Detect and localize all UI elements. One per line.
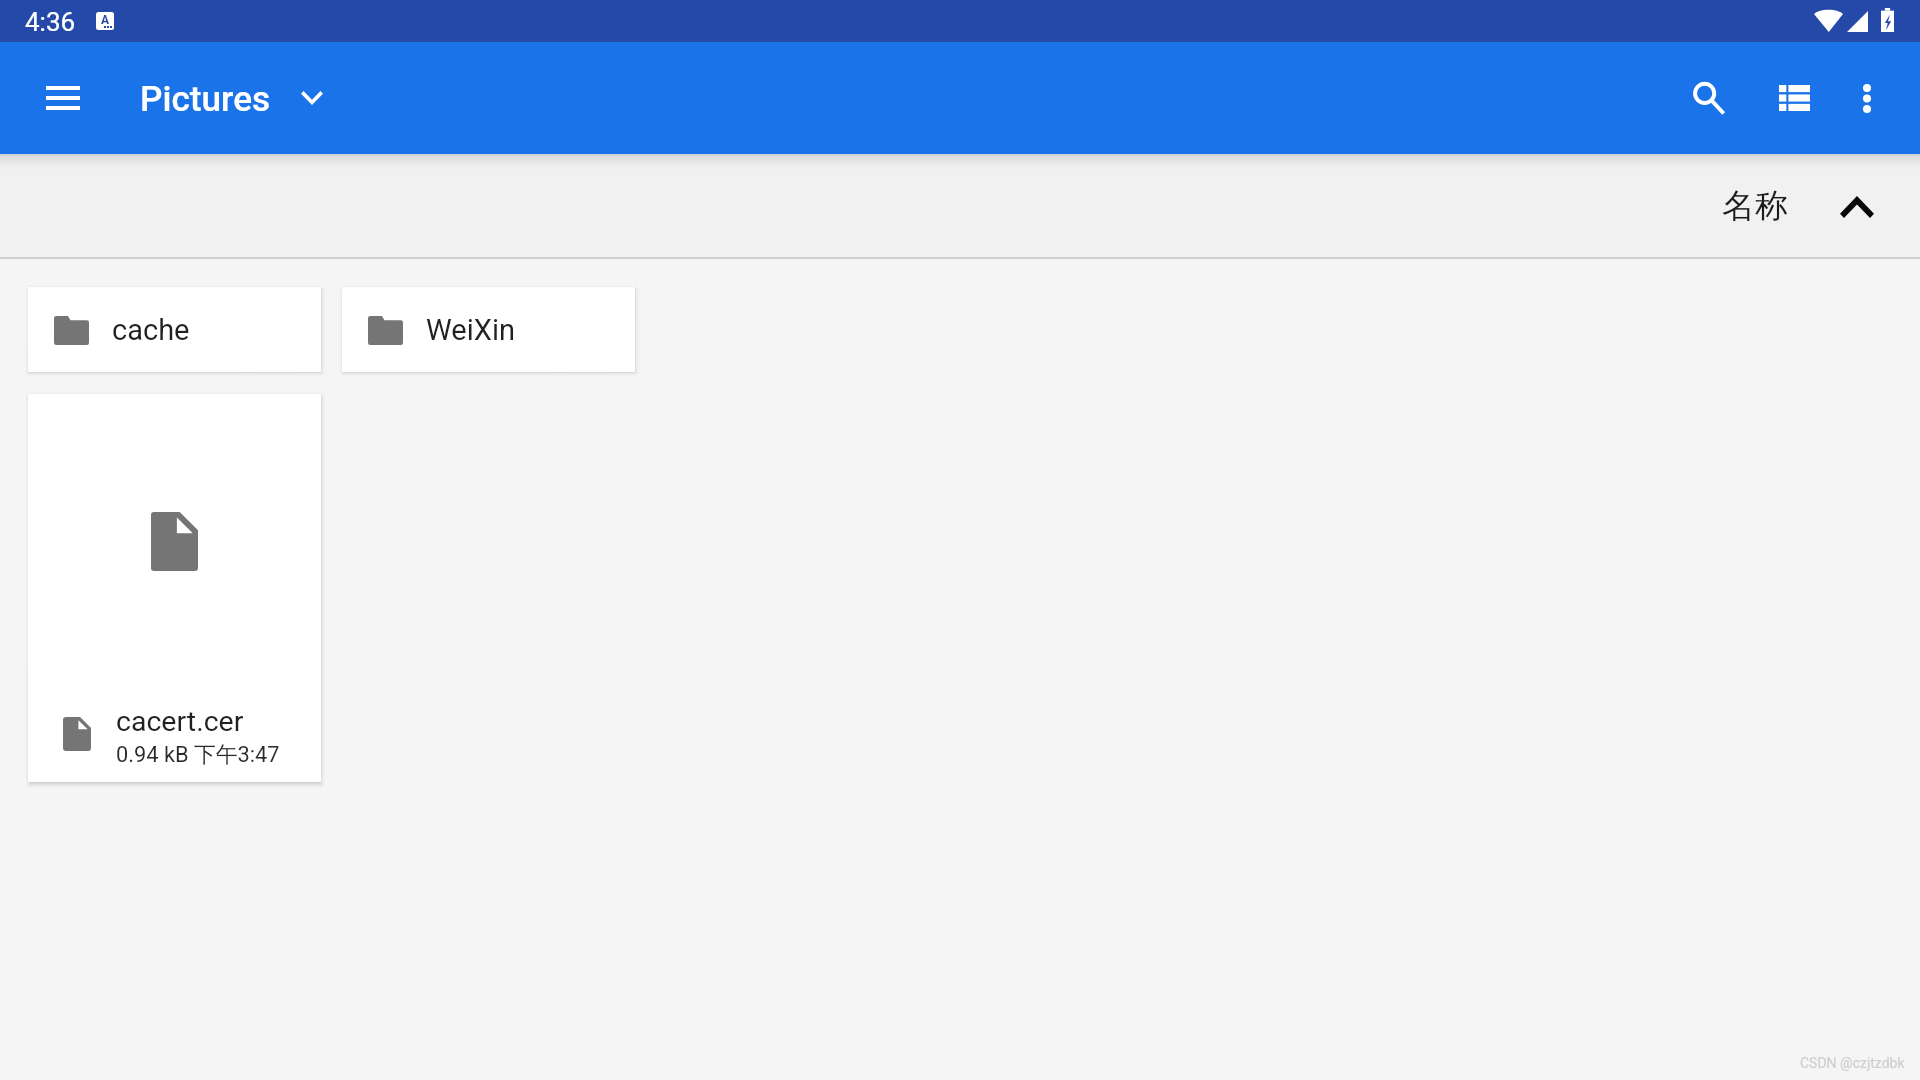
staticText: CSDN @czjtzdbk <box>1800 1055 1905 1071</box>
button[interactable]: cache <box>28 287 321 372</box>
button[interactable]: WeiXin <box>342 287 635 372</box>
button[interactable]: Open navigation drawer <box>30 65 96 131</box>
staticText: cacert.cer <box>116 705 244 738</box>
staticText: Pictures <box>140 78 271 119</box>
button[interactable]: 名称 <box>1722 186 1874 228</box>
button[interactable]: cacert.cer <box>28 394 321 782</box>
staticText: A <box>101 13 110 27</box>
staticText: cache <box>112 313 190 347</box>
staticText: 名称 <box>1722 185 1788 227</box>
staticText: WeiXin <box>426 313 515 347</box>
button[interactable]: List view <box>1758 62 1830 134</box>
staticText: 0.94 kB 下午3:47 <box>116 741 280 768</box>
staticText: 4:36 <box>25 7 76 37</box>
button[interactable]: More options <box>1831 62 1903 134</box>
button[interactable]: Search <box>1672 62 1744 134</box>
button[interactable]: Pictures <box>140 78 323 119</box>
